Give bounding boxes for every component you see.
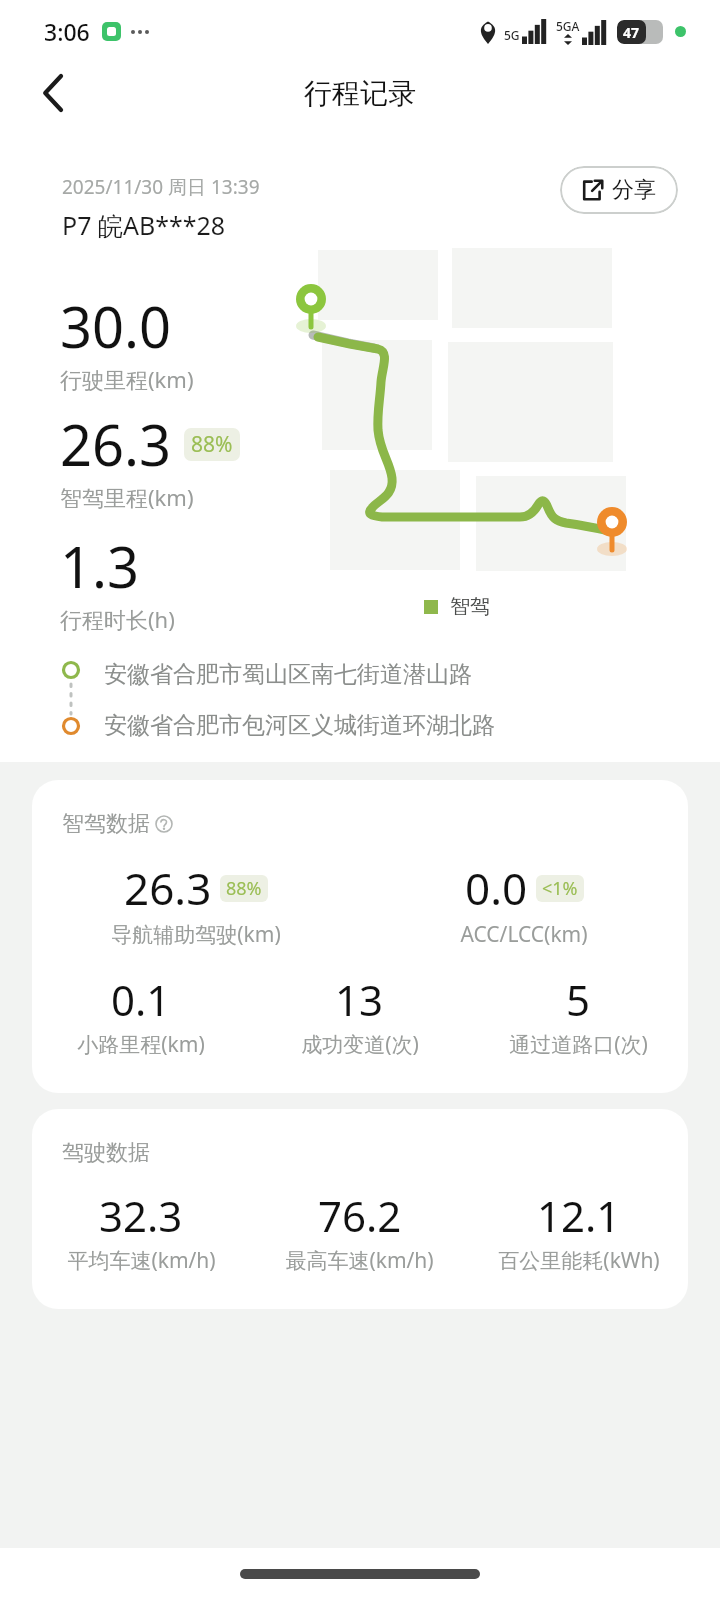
staticText: 智驾数据 [62,810,150,838]
staticText: 驾驶数据 [62,1139,150,1167]
button[interactable]: 0.0 [360,858,688,949]
button[interactable]: 12.1 [469,1187,688,1275]
staticText: 3:06 [44,16,90,47]
staticText: 5G [504,27,520,43]
staticText: 47 [623,23,640,42]
staticText: 通过道路口(次) [509,1030,648,1059]
staticText: 最高车速(km/h) [285,1246,434,1275]
staticText: 安徽省合肥市蜀山区南七街道潜山路 [104,660,472,689]
staticText: 30.0 [60,288,172,364]
staticText: 导航辅助驾驶(km) [111,920,281,949]
staticText: 76.2 [318,1187,402,1244]
staticText: 13 [335,971,384,1028]
staticText: 行程记录 [304,76,416,111]
staticText: 百公里能耗(kWh) [498,1246,660,1275]
staticText: 0.0 [465,858,528,918]
button[interactable]: 76.2 [250,1187,469,1275]
staticText: 26.3 [60,406,172,482]
staticText: 5 [566,971,591,1028]
button[interactable]: 26.3 [32,858,360,949]
staticText: 1.3 [60,528,140,604]
button[interactable]: 13 [250,971,469,1059]
staticText: 32.3 [99,1187,183,1244]
staticText: P7 皖AB***28 [62,208,226,242]
staticText: <1% [542,876,578,901]
staticText: ACC/LCC(km) [460,920,588,949]
button[interactable]: 返回 [26,65,82,121]
staticText: 小路里程(km) [77,1030,205,1059]
staticText: 成功变道(次) [301,1030,419,1059]
staticText: 5GA [556,18,580,34]
button[interactable]: 0.1 [32,971,250,1059]
staticText: 智驾 [450,594,490,619]
staticText: 行程时长(h) [60,604,175,634]
staticText: 安徽省合肥市包河区义城街道环湖北路 [104,711,495,740]
staticText: 26.3 [124,858,212,918]
staticText: 2025/11/30 周日 13:39 [62,174,260,200]
button[interactable]: 5 [469,971,688,1059]
staticText: 88% [226,876,262,901]
staticText: 行驶里程(km) [60,364,194,394]
staticText: 分享 [612,176,656,204]
staticText: 智驾里程(km) [60,482,194,512]
button[interactable]: 分享 [560,166,678,214]
staticText: 12.1 [537,1187,621,1244]
button[interactable]: 32.3 [32,1187,250,1275]
staticText: 平均车速(km/h) [67,1246,216,1275]
staticText: 0.1 [111,971,171,1028]
staticText: 88% [191,430,233,459]
